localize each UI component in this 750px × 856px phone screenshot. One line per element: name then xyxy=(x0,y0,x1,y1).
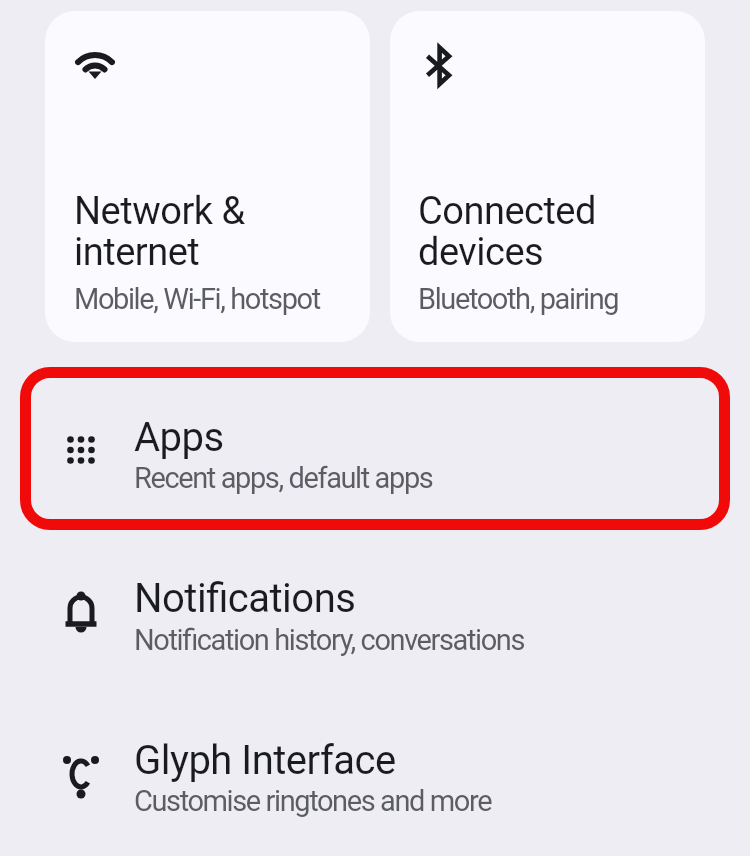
staticText: Notifications xyxy=(134,575,356,622)
button[interactable]: Notifications xyxy=(32,545,718,677)
staticText: Network & internet xyxy=(74,189,245,275)
staticText: Apps xyxy=(134,414,224,461)
staticText: Connected devices xyxy=(418,189,596,275)
staticText: Notification history, conversations xyxy=(134,623,525,657)
button[interactable]: Network & internet xyxy=(45,11,370,342)
staticText: Recent apps, default apps xyxy=(134,461,433,495)
button[interactable]: Apps xyxy=(32,379,718,520)
staticText: Bluetooth, pairing xyxy=(418,282,619,316)
button[interactable]: Connected devices xyxy=(390,11,705,342)
button[interactable]: Glyph Interface xyxy=(32,710,718,842)
staticText: Mobile, Wi-Fi, hotspot xyxy=(74,282,320,316)
staticText: Glyph Interface xyxy=(134,737,396,784)
staticText: Customise ringtones and more xyxy=(134,784,492,818)
